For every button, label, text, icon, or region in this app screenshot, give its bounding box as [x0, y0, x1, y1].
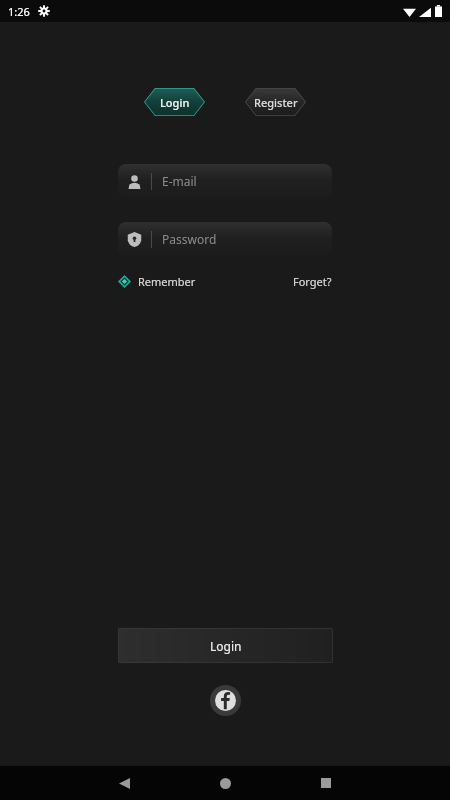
button[interactable]: Home — [209, 767, 241, 799]
button[interactable]: Login — [118, 628, 333, 663]
button[interactable]: Recent apps — [310, 767, 342, 799]
button[interactable]: E-mail — [118, 164, 332, 198]
button[interactable]: Login — [144, 88, 205, 116]
button[interactable]: Sign in with Facebook — [210, 685, 241, 716]
staticText: Password — [162, 231, 217, 247]
button[interactable]: Password — [118, 222, 332, 256]
staticText: Remember — [138, 274, 196, 289]
button[interactable]: Back — [108, 767, 140, 799]
staticText: Forget? — [293, 274, 332, 289]
button[interactable]: Remember — [118, 274, 196, 289]
staticText: E-mail — [162, 173, 197, 189]
staticText: 1:26 — [8, 4, 30, 19]
staticText: Register — [254, 95, 298, 110]
button[interactable]: Register — [245, 88, 306, 116]
button[interactable]: Forget? — [293, 274, 332, 289]
staticText: Login — [210, 638, 242, 654]
staticText: Login — [160, 95, 190, 110]
